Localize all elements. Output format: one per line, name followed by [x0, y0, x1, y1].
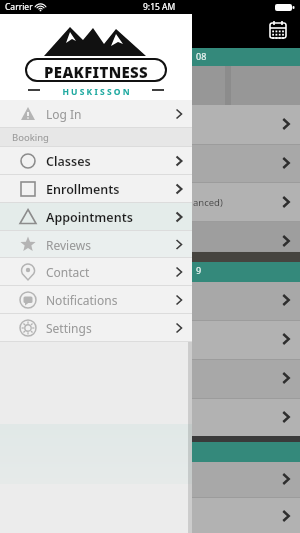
- staticText: H U S K I S S O N: [62, 86, 130, 98]
- staticText: PEAKFITNESS: [44, 62, 148, 82]
- staticText: Settings: [46, 320, 92, 336]
- staticText: Notifications: [46, 292, 118, 308]
- button[interactable]: Settings: [0, 314, 192, 342]
- button[interactable]: Log In: [0, 100, 192, 128]
- button[interactable]: Appointments: [0, 203, 192, 231]
- staticText: Contact: [46, 264, 90, 280]
- staticText: Enrollments: [46, 181, 120, 198]
- staticText: Log In: [46, 106, 82, 122]
- button[interactable]: Reviews: [0, 231, 192, 258]
- staticText: Appointments: [46, 209, 133, 226]
- staticText: 9: [196, 264, 202, 276]
- button[interactable]: Notifications: [0, 286, 192, 314]
- staticText: 08: [196, 50, 207, 62]
- button[interactable]: Contact: [0, 258, 192, 286]
- button[interactable]: Enrollments: [0, 175, 192, 203]
- staticText: anced): [193, 196, 223, 209]
- staticText: Reviews: [46, 237, 91, 253]
- button[interactable]: Classes: [0, 147, 192, 175]
- staticText: 9:15 AM: [143, 1, 176, 13]
- staticText: Classes: [46, 153, 91, 170]
- staticText: Booking: [12, 131, 49, 144]
- staticText: Carrier: [5, 1, 33, 13]
- button[interactable]: Calendar: [264, 16, 292, 44]
